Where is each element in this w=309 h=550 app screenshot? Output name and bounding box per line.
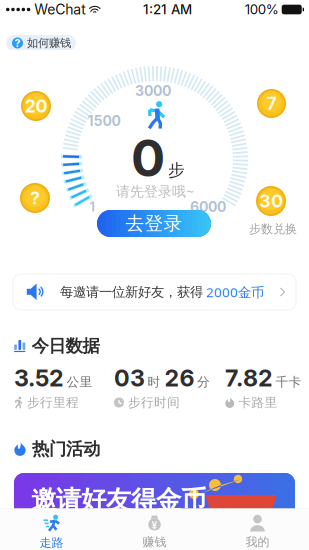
staticText: 分 <box>197 374 210 390</box>
staticText: 7 <box>266 93 276 114</box>
staticText: 卡路里 <box>238 394 277 410</box>
staticText: 如何赚钱 <box>27 36 71 50</box>
staticText: 我的 <box>245 534 269 550</box>
staticText: 走路 <box>39 535 63 550</box>
button[interactable]: ? <box>6 35 76 51</box>
staticText: 2000金币 <box>203 283 264 301</box>
staticText: 步行时间 <box>128 394 180 410</box>
button[interactable]: ¥ <box>103 508 206 550</box>
staticText: WeChat <box>34 1 86 18</box>
staticText: 邀请好友得金币 <box>31 484 206 516</box>
staticText: 去登录 <box>125 212 182 235</box>
staticText: ? <box>30 187 40 209</box>
staticText: 公里 <box>66 374 92 390</box>
staticText: 步 <box>168 160 185 181</box>
staticText: 今日数据 <box>31 335 99 357</box>
staticText: 30 <box>259 190 283 212</box>
staticText: 步行里程 <box>27 394 79 410</box>
staticText: 步数兑换 <box>249 221 297 236</box>
staticText: 100% <box>245 1 279 17</box>
staticText: 1500 <box>87 112 120 129</box>
staticText: 03 <box>114 364 145 392</box>
staticText: 每邀请一位新好友，获得 <box>60 284 203 300</box>
button[interactable]: 去登录 <box>97 210 211 237</box>
staticText: 千卡 <box>275 374 301 390</box>
staticText: 3000 <box>135 82 171 99</box>
staticText: 1:21 AM <box>143 1 192 17</box>
staticText: 3.52 <box>14 364 64 392</box>
button[interactable]: 我的 <box>206 508 309 550</box>
staticText: 20 <box>24 95 47 117</box>
staticText: 6000 <box>190 198 226 215</box>
staticText: 1 <box>89 199 94 215</box>
staticText: 26 <box>164 364 194 392</box>
button[interactable]: 走路 <box>0 508 103 550</box>
button[interactable]: 步数兑换 <box>248 223 298 235</box>
staticText: 请先登录哦~ <box>116 181 194 201</box>
staticText: ? <box>14 36 20 49</box>
staticText: 热门活动 <box>32 438 100 460</box>
staticText: 0 <box>131 127 165 189</box>
button[interactable]: 邀请好友得金币 <box>14 473 295 533</box>
staticText: ¥ <box>151 519 157 532</box>
staticText: 赚钱 <box>142 534 166 550</box>
staticText: 时 <box>147 374 160 390</box>
button[interactable]: 每邀请一位新好友，获得 <box>13 274 296 310</box>
staticText: 7.82 <box>225 364 273 392</box>
